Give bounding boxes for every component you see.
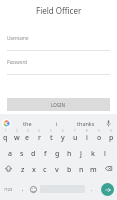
button[interactable]: ?123	[0, 181, 17, 197]
staticText: c	[43, 165, 47, 175]
staticText: h	[67, 149, 72, 159]
staticText: 3	[27, 129, 29, 133]
button[interactable]: x	[28, 160, 39, 176]
staticText: 4	[38, 129, 40, 133]
button[interactable]: 2	[11, 128, 22, 144]
staticText: Username	[7, 35, 29, 41]
button[interactable]: thanks	[71, 114, 100, 128]
button[interactable]: Backspace	[99, 160, 117, 176]
staticText: g	[55, 149, 60, 159]
staticText: ,	[22, 185, 24, 192]
staticText: i	[56, 120, 58, 127]
staticText: k	[91, 149, 95, 159]
button[interactable]: Emoji	[28, 181, 39, 197]
button[interactable]: 9	[93, 128, 105, 144]
staticText: n	[79, 165, 84, 175]
button[interactable]: 1	[0, 128, 11, 144]
staticText: the	[23, 120, 32, 127]
button[interactable]: 7	[69, 128, 81, 144]
button[interactable]: m	[87, 160, 99, 176]
staticText: s	[20, 149, 24, 159]
staticText: 5	[50, 129, 52, 133]
button[interactable]: 3	[22, 128, 33, 144]
staticText: x	[32, 165, 36, 175]
staticText: 1	[5, 129, 7, 133]
staticText: 7	[74, 129, 76, 133]
button[interactable]: z	[17, 160, 28, 176]
button[interactable]: 4	[33, 128, 45, 144]
staticText: d	[31, 149, 36, 159]
button[interactable]: 5	[45, 128, 57, 144]
staticText: 6	[62, 129, 64, 133]
button[interactable]: l	[99, 144, 111, 160]
button[interactable]: i	[42, 114, 71, 128]
staticText: 9	[98, 129, 100, 133]
button[interactable]: the	[13, 114, 42, 128]
button[interactable]: h	[63, 144, 75, 160]
staticText: LOGIN	[51, 102, 66, 108]
button[interactable]: 0	[105, 128, 117, 144]
button[interactable]: 6	[57, 128, 69, 144]
staticText: u	[73, 133, 78, 143]
staticText: i	[86, 133, 88, 143]
staticText: 0	[110, 129, 112, 133]
button[interactable]: Enter	[97, 181, 117, 197]
button[interactable]: 8	[81, 128, 93, 144]
staticText: Field Officer	[36, 5, 82, 16]
staticText: t	[50, 133, 53, 143]
staticText: f	[44, 149, 47, 159]
button[interactable]: v	[51, 160, 63, 176]
staticText: z	[21, 165, 25, 175]
button[interactable]: a	[5, 144, 16, 160]
staticText: .	[91, 185, 93, 192]
staticText: j	[80, 149, 82, 159]
button[interactable]: j	[75, 144, 87, 160]
staticText: o	[97, 133, 102, 143]
staticText: 2	[16, 129, 18, 133]
button[interactable]: .	[86, 181, 97, 197]
button[interactable]: g	[51, 144, 63, 160]
button[interactable]: Google Search	[0, 114, 13, 128]
button[interactable]: Voice input	[100, 114, 117, 128]
staticText: a	[8, 149, 13, 159]
button[interactable]: ,	[17, 181, 28, 197]
button[interactable]: LOGIN	[7, 98, 110, 111]
staticText: v	[55, 165, 59, 175]
button[interactable]: n	[75, 160, 87, 176]
staticText: q	[3, 133, 8, 143]
staticText: w	[14, 133, 20, 143]
staticText: e	[25, 133, 30, 143]
staticText: m	[90, 165, 97, 175]
button[interactable]: d	[27, 144, 39, 160]
button[interactable]: k	[87, 144, 99, 160]
button[interactable]: Shift	[0, 160, 17, 176]
button[interactable]: f	[39, 144, 51, 160]
staticText: y	[61, 133, 65, 143]
staticText: b	[67, 165, 72, 175]
staticText: p	[109, 133, 114, 143]
staticText: ?123	[4, 187, 13, 192]
staticText: r	[38, 133, 41, 143]
staticText: Password	[7, 59, 27, 65]
staticText: thanks	[77, 120, 95, 127]
staticText: 8	[86, 129, 88, 133]
button[interactable]: c	[39, 160, 51, 176]
button[interactable]: s	[16, 144, 27, 160]
button[interactable]: b	[63, 160, 75, 176]
staticText: l	[104, 149, 106, 159]
